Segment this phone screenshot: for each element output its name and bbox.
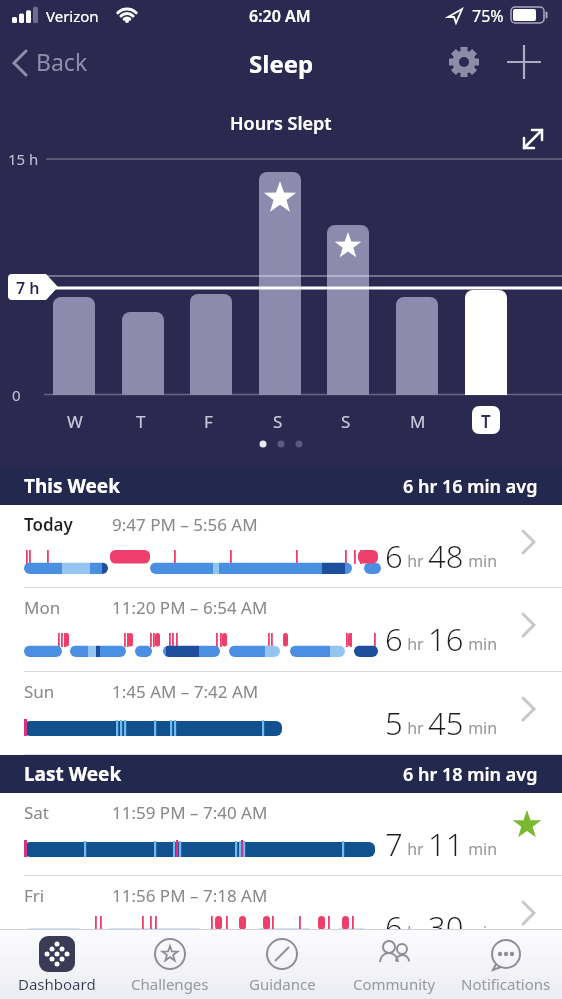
staticText: M	[410, 410, 426, 433]
button[interactable]: Community	[338, 929, 450, 999]
button[interactable]: Challenges	[113, 929, 226, 999]
staticText: S	[341, 410, 351, 433]
staticText: 6	[385, 906, 403, 948]
button[interactable]: Back	[8, 44, 108, 80]
button[interactable]	[444, 42, 484, 82]
staticText: Sat	[24, 801, 50, 824]
staticText: This Week	[24, 473, 120, 499]
staticText: min	[464, 717, 498, 739]
staticText: Today	[24, 513, 73, 536]
staticText: hr	[403, 921, 428, 943]
button[interactable]: Today	[0, 505, 562, 588]
staticText: T	[481, 410, 491, 433]
button[interactable]: Guidance	[226, 929, 338, 999]
staticText: 11	[428, 823, 464, 865]
staticText: Fri	[24, 884, 45, 907]
staticText: 6:20 AM	[249, 5, 311, 27]
staticText: 5	[385, 702, 403, 744]
staticText: Community	[353, 974, 436, 994]
staticText: hr	[403, 717, 428, 739]
staticText: Back	[36, 46, 88, 77]
button[interactable]: Notifications	[450, 929, 562, 999]
staticText: 0	[12, 385, 21, 405]
staticText: T	[136, 410, 146, 433]
button[interactable]	[504, 42, 544, 82]
staticText: min	[464, 838, 498, 860]
staticText: hr	[403, 550, 428, 572]
staticText: min	[464, 550, 498, 572]
staticText: 15 h	[8, 149, 39, 169]
staticText: F	[204, 410, 213, 433]
staticText: 48	[428, 535, 464, 577]
staticText: S	[273, 410, 283, 433]
staticText: 30	[428, 906, 464, 948]
staticText: 7	[385, 823, 403, 865]
staticText: Mon	[24, 596, 61, 619]
staticText: min	[464, 921, 498, 943]
staticText: 11:56 PM – 7:18 AM	[112, 884, 268, 907]
staticText: 6	[385, 618, 403, 660]
staticText: 7 h	[16, 277, 40, 299]
staticText: 75%	[472, 5, 504, 27]
staticText: min	[464, 633, 498, 655]
staticText: 1:45 AM – 7:42 AM	[112, 680, 259, 703]
staticText: hr	[403, 838, 428, 860]
staticText: 11:20 PM – 6:54 AM	[112, 596, 268, 619]
button[interactable]: Sun	[0, 672, 562, 755]
staticText: 16	[428, 618, 464, 660]
staticText: Guidance	[249, 974, 316, 994]
staticText: 6 hr 18 min avg	[403, 762, 538, 787]
staticText: 6 hr 16 min avg	[403, 474, 538, 499]
staticText: Dashboard	[18, 974, 96, 994]
button[interactable]: Fri	[0, 876, 562, 999]
button[interactable]: Sat	[0, 793, 562, 876]
staticText: 6	[385, 535, 403, 577]
staticText: 9:47 PM – 5:56 AM	[112, 513, 258, 536]
staticText: 45	[428, 702, 464, 744]
staticText: Sleep	[249, 47, 314, 80]
staticText: Verizon	[46, 6, 99, 26]
staticText: Challenges	[131, 974, 209, 994]
staticText: Sun	[24, 680, 55, 703]
staticText: W	[67, 410, 83, 433]
staticText: Last Week	[24, 761, 122, 787]
button[interactable]: Dashboard	[0, 929, 113, 999]
staticText: Hours Slept	[230, 111, 332, 136]
button[interactable]: Mon	[0, 588, 562, 672]
staticText: Notifications	[461, 974, 551, 994]
staticText: 11:59 PM – 7:40 AM	[112, 801, 268, 824]
staticText: hr	[403, 633, 428, 655]
